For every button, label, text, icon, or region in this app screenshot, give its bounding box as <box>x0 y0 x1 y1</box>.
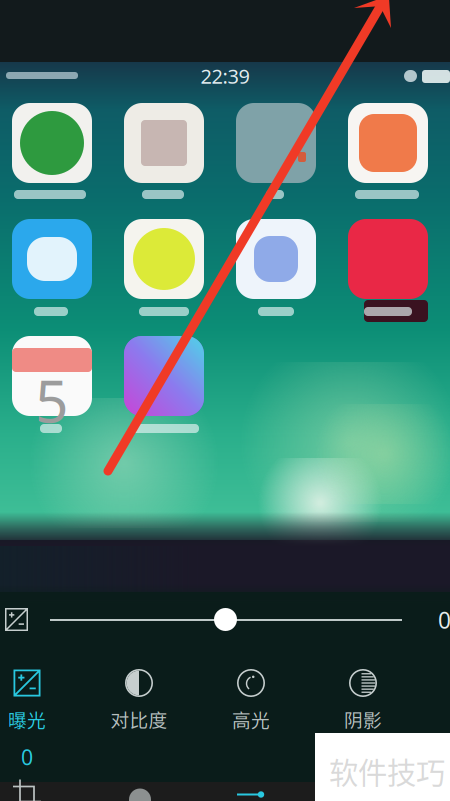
button[interactable]: Crop <box>0 785 84 801</box>
button[interactable]: 对比度 <box>83 668 195 730</box>
button[interactable]: Filters <box>84 786 196 801</box>
button[interactable]: 高光 <box>195 668 307 730</box>
staticText: 0 <box>21 743 33 771</box>
staticText: 阴影 <box>344 705 382 732</box>
staticText: 软件技巧 <box>329 750 445 792</box>
staticText: 5 <box>35 361 69 439</box>
staticText: 0 <box>438 605 450 635</box>
staticText: 对比度 <box>110 705 167 732</box>
staticText: 曝光 <box>8 705 46 732</box>
button[interactable]: 阴影 <box>307 668 419 730</box>
button[interactable]: 曝光 <box>0 668 83 730</box>
staticText: 高光 <box>232 705 270 732</box>
button[interactable]: Adjust <box>196 786 308 801</box>
staticText: 22:39 <box>200 63 249 89</box>
